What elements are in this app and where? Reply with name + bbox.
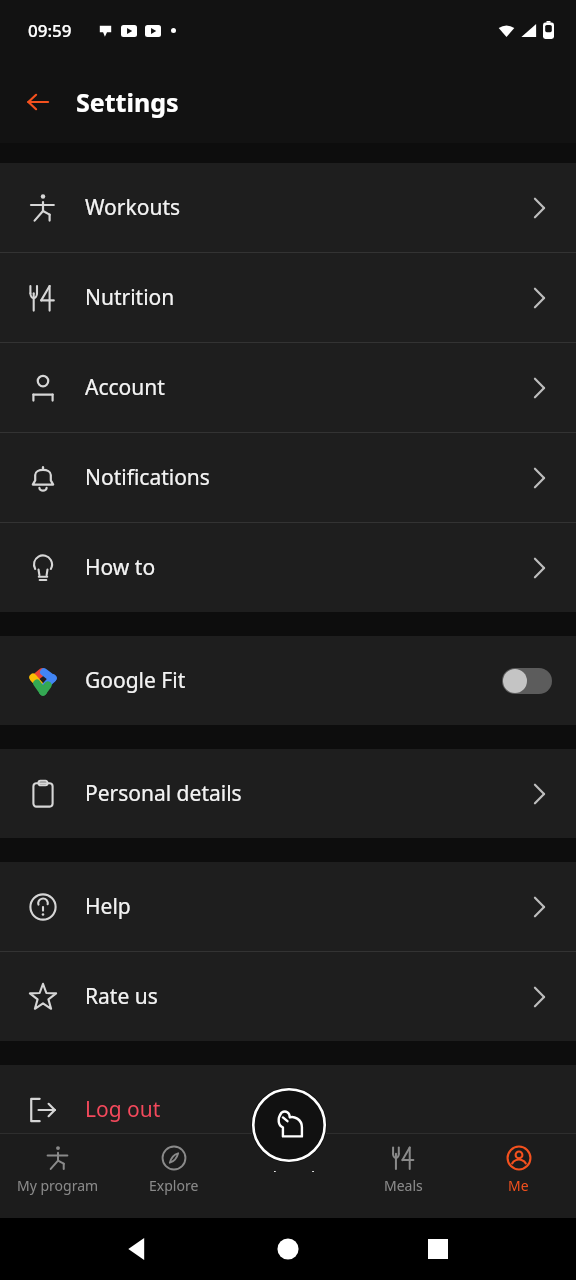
staticText: Notifications [85, 463, 210, 492]
button[interactable]: Workouts [0, 163, 576, 252]
button[interactable]: MadMuscles Coaches [247, 1087, 330, 1172]
button[interactable]: Help [0, 862, 576, 951]
button[interactable]: Back [14, 78, 62, 126]
staticText: How to [85, 553, 156, 582]
button[interactable]: Me [461, 1133, 576, 1218]
button[interactable]: Account [0, 343, 576, 432]
staticText: Rate us [85, 982, 158, 1011]
staticText: Personal details [85, 779, 242, 808]
staticText: Nutrition [85, 283, 175, 312]
button[interactable]: Rate us [0, 952, 576, 1041]
staticText: Account [85, 373, 165, 402]
button[interactable]: Explore [116, 1133, 231, 1218]
staticText: Log out [85, 1095, 161, 1124]
staticText: Google Fit [85, 666, 186, 695]
staticText: Workouts [85, 193, 181, 222]
button[interactable]: How to [0, 523, 576, 612]
button[interactable]: Meals [346, 1133, 461, 1218]
button[interactable]: Log out [0, 1065, 576, 1154]
staticText: Settings [76, 85, 179, 119]
staticText: Explore [149, 1176, 199, 1195]
button[interactable]: My program [0, 1133, 116, 1218]
button[interactable]: Nutrition [0, 253, 576, 342]
staticText: Help [85, 892, 131, 921]
staticText: Me [508, 1176, 529, 1195]
staticText: MadMuscles Coaches [247, 1167, 330, 1172]
button[interactable]: Personal details [0, 749, 576, 838]
button[interactable]: Google Fit toggle [502, 668, 552, 694]
staticText: Meals [384, 1176, 423, 1195]
button[interactable]: Notifications [0, 433, 576, 522]
button[interactable]: Google Fit [0, 636, 576, 725]
staticText: 09:59 [28, 19, 72, 42]
staticText: My program [17, 1176, 99, 1195]
